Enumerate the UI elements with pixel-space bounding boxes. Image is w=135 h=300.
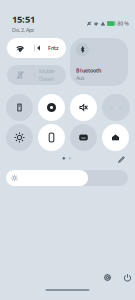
- button[interactable]: Flashlight: [6, 94, 33, 121]
- button[interactable]: Bluetooth: [70, 38, 128, 86]
- button[interactable]: Home: [102, 124, 129, 151]
- staticText: Fritz: [48, 44, 59, 52]
- staticText: Do, 2. Apr.: [12, 26, 34, 33]
- button[interactable]: Record: [38, 94, 65, 121]
- staticText: Mobile: [39, 68, 55, 75]
- staticText: 80 %: [117, 20, 129, 27]
- button[interactable]: Mobile Daten: [7, 65, 66, 85]
- staticText: Daten: [39, 75, 54, 82]
- staticText: 15:51: [12, 13, 35, 25]
- staticText: Bluetooth: [76, 67, 101, 74]
- button[interactable]: Edit: [117, 155, 126, 164]
- button[interactable]: Mute: [70, 94, 97, 121]
- button[interactable]: Brightness: [6, 124, 33, 151]
- button[interactable]: Settings: [102, 272, 113, 283]
- button[interactable]: Screen: [70, 124, 97, 151]
- button[interactable]: Wi-Fi Fritz: [7, 38, 66, 58]
- staticText: Aus: [76, 74, 85, 82]
- button[interactable]: Phone: [38, 124, 65, 151]
- button[interactable]: More controls: [102, 94, 130, 121]
- button[interactable]: Power: [122, 272, 133, 283]
